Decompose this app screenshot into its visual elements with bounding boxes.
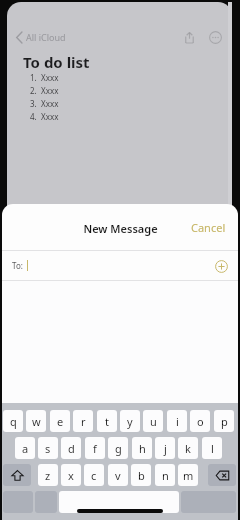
staticText: r — [81, 414, 86, 429]
button[interactable]: Share — [178, 26, 200, 48]
button[interactable]: m — [178, 464, 198, 486]
button[interactable]: d — [61, 437, 81, 459]
staticText: k — [185, 441, 191, 456]
staticText: New Message — [83, 221, 158, 236]
staticText: q — [10, 414, 17, 429]
button[interactable]: r — [73, 410, 93, 432]
staticText: n — [162, 468, 169, 483]
staticText: c — [91, 468, 97, 483]
button[interactable]: n — [155, 464, 175, 486]
staticText: v — [115, 468, 121, 483]
staticText: f — [93, 441, 97, 456]
staticText: 1. — [30, 72, 37, 83]
button[interactable]: x — [61, 464, 81, 486]
staticText: Xxxx — [41, 85, 59, 96]
staticText: To do list — [23, 52, 90, 72]
staticText: To: — [12, 260, 23, 271]
staticText: b — [138, 468, 145, 483]
button[interactable]: Cancel — [179, 212, 238, 243]
staticText: w — [32, 414, 41, 429]
button[interactable]: t — [97, 410, 117, 432]
staticText: a — [22, 441, 29, 456]
button[interactable]: l — [202, 437, 222, 459]
button[interactable]: p — [214, 410, 234, 432]
button[interactable]: Add contact — [212, 257, 230, 275]
staticText: Cancel — [191, 220, 226, 235]
button[interactable]: s — [38, 437, 58, 459]
button[interactable]: e — [50, 410, 70, 432]
staticText: h — [139, 441, 146, 456]
button[interactable]: Shift — [3, 464, 31, 486]
button[interactable]: More options — [204, 26, 226, 48]
staticText: d — [68, 441, 75, 456]
button[interactable]: h — [132, 437, 152, 459]
button[interactable]: All iCloud — [7, 31, 72, 43]
button[interactable]: z — [38, 464, 58, 486]
staticText: Xxxx — [41, 111, 59, 122]
staticText: All iCloud — [26, 31, 66, 43]
button[interactable]: i — [167, 410, 187, 432]
button[interactable]: b — [131, 464, 151, 486]
button[interactable]: Backspace — [208, 464, 236, 486]
staticText: l — [211, 441, 214, 456]
staticText: 2. — [30, 85, 37, 96]
staticText: i — [176, 414, 179, 429]
staticText: 3. — [30, 98, 37, 109]
button[interactable]: y — [120, 410, 140, 432]
button[interactable]: f — [85, 437, 105, 459]
button[interactable]: Space — [59, 491, 179, 513]
staticText: x — [68, 468, 74, 483]
staticText: m — [183, 468, 194, 483]
staticText: j — [164, 441, 167, 456]
staticText: t — [105, 414, 109, 429]
button[interactable]: o — [190, 410, 210, 432]
button[interactable]: q — [3, 410, 23, 432]
button[interactable]: v — [108, 464, 128, 486]
button[interactable]: u — [143, 410, 163, 432]
button[interactable]: j — [155, 437, 175, 459]
button[interactable]: a — [15, 437, 35, 459]
staticText: e — [57, 414, 64, 429]
staticText: u — [150, 414, 157, 429]
staticText: Xxxx — [41, 98, 59, 109]
button[interactable]: k — [178, 437, 198, 459]
staticText: z — [45, 468, 51, 483]
button[interactable]: g — [108, 437, 128, 459]
staticText: s — [45, 441, 51, 456]
button[interactable]: c — [84, 464, 104, 486]
staticText: 4. — [30, 111, 37, 122]
button[interactable]: w — [26, 410, 46, 432]
button[interactable]: To: — [2, 251, 238, 280]
staticText: y — [127, 414, 133, 429]
staticText: p — [221, 414, 228, 429]
staticText: g — [115, 441, 122, 456]
staticText: Xxxx — [41, 72, 59, 83]
staticText: o — [197, 414, 204, 429]
